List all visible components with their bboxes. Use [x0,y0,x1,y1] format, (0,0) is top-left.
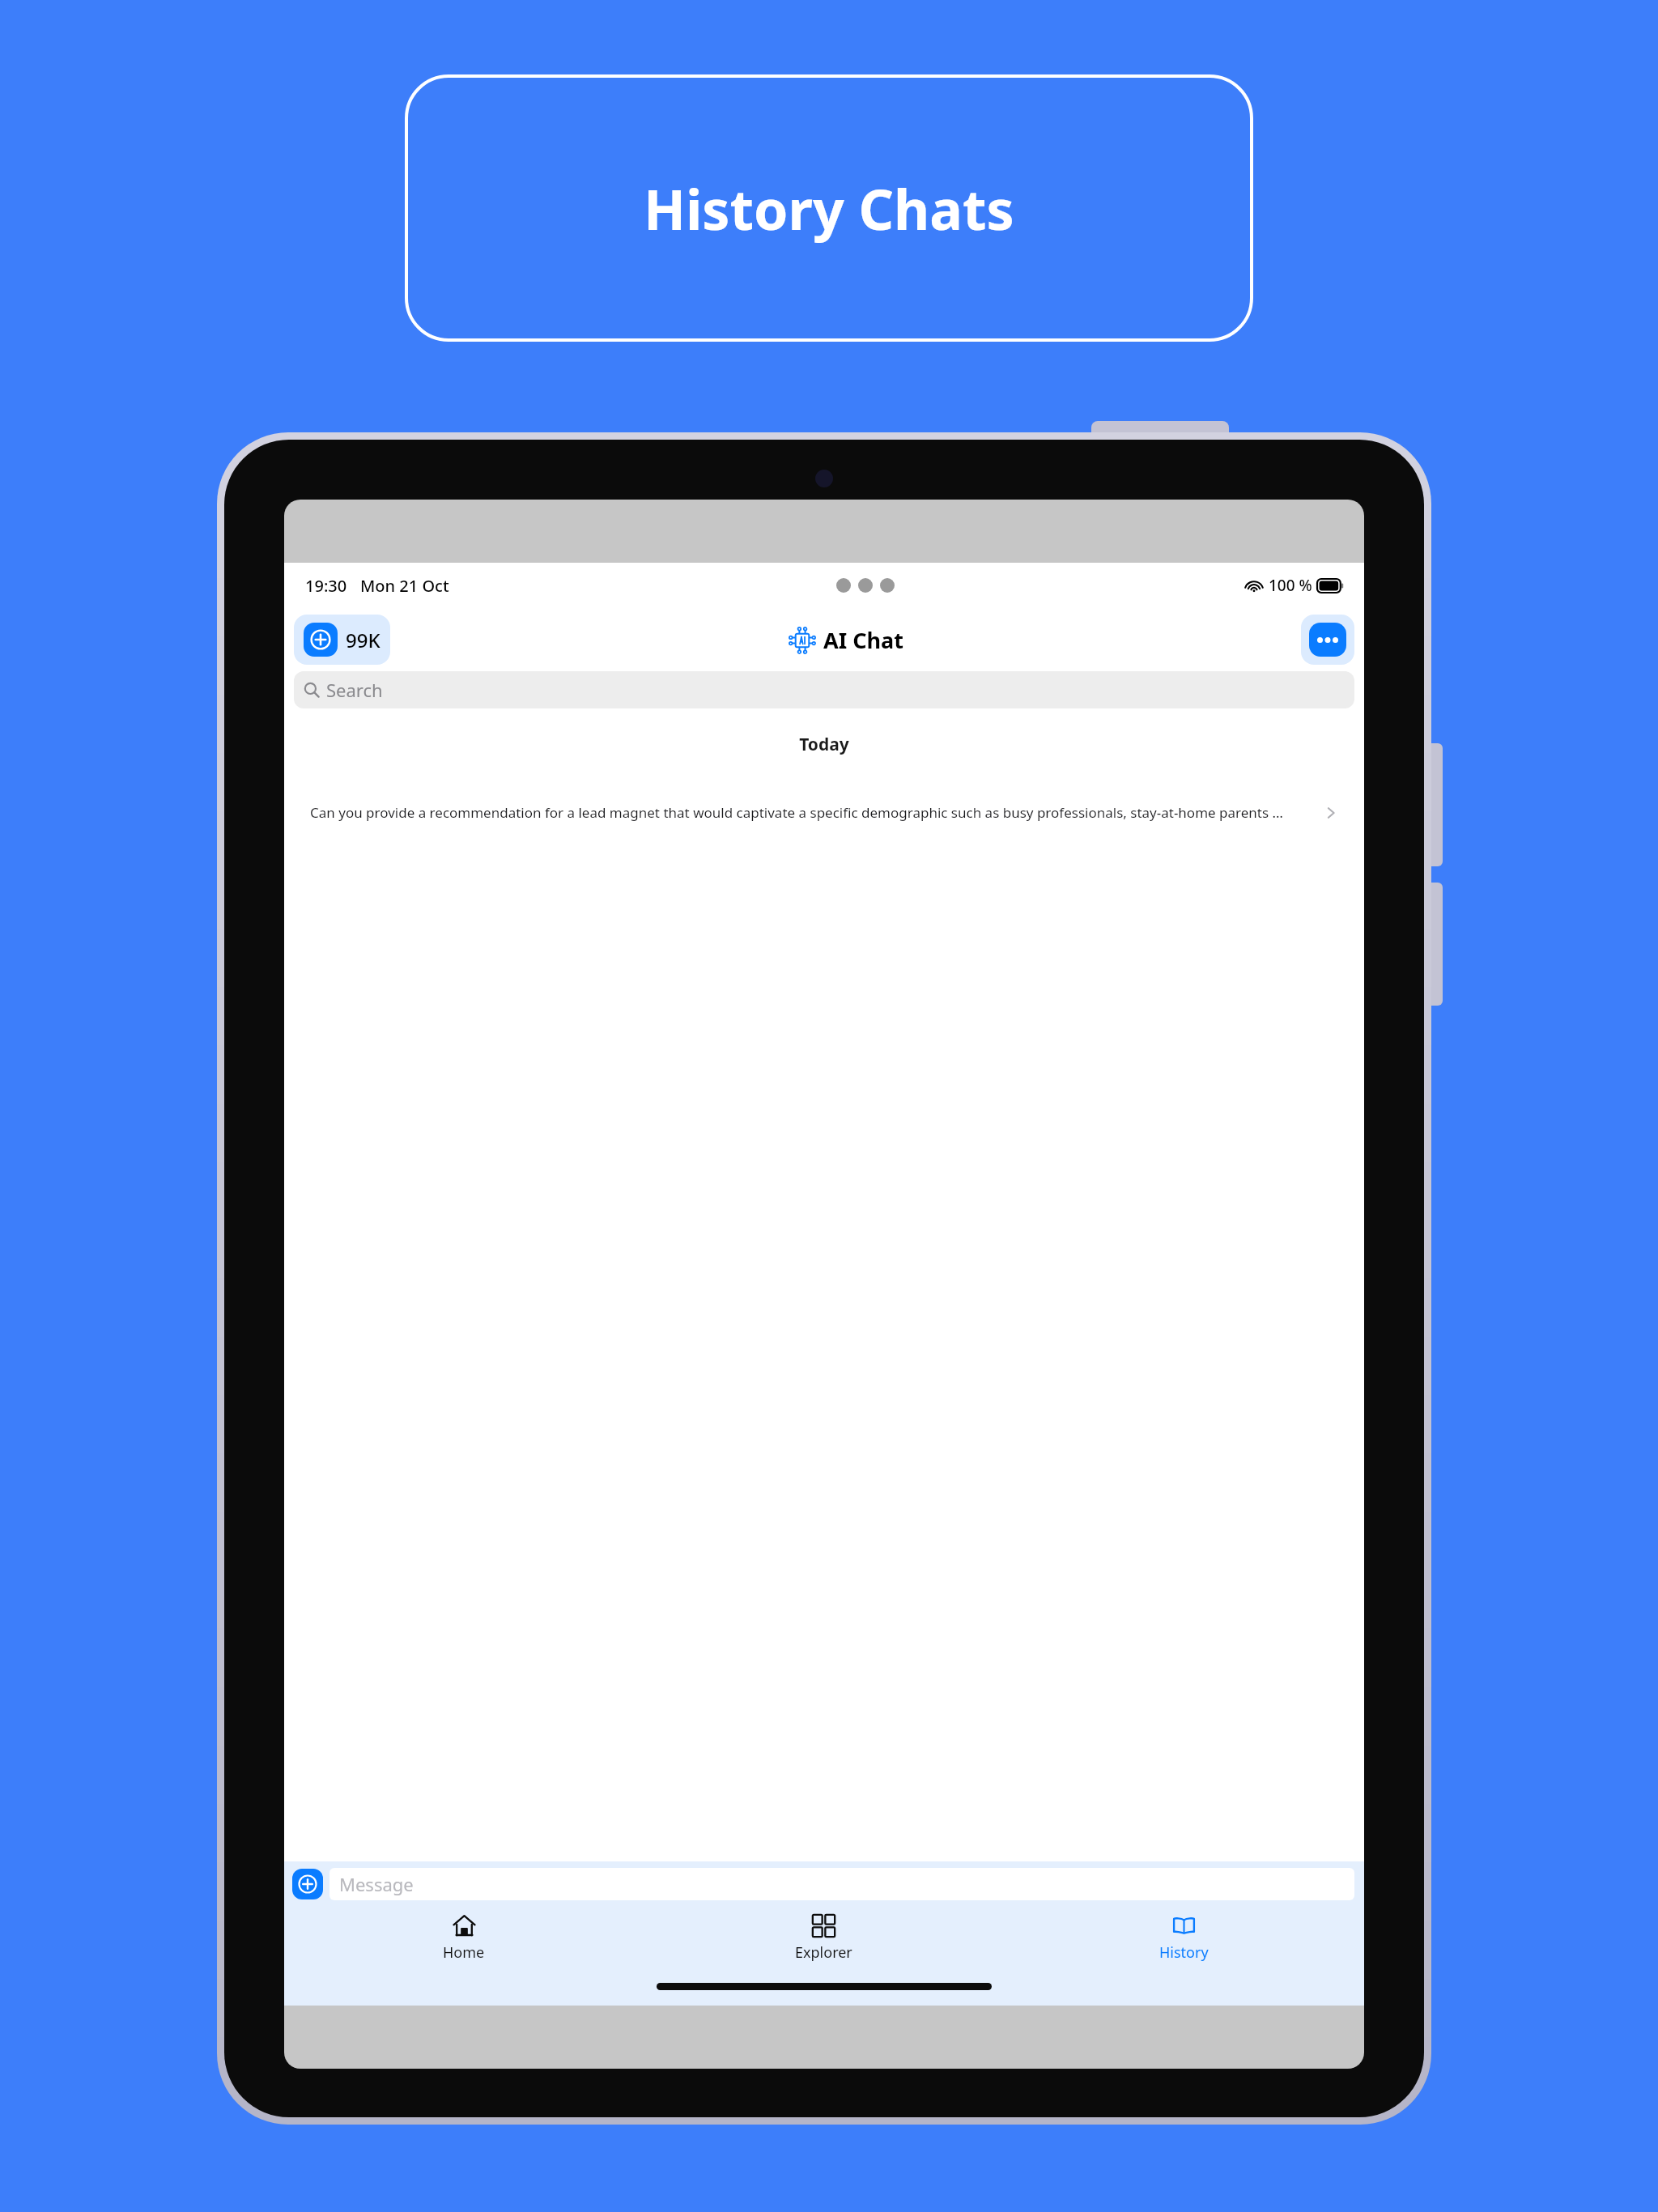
staticText: 100 % [1269,575,1312,596]
staticText: History [1159,1942,1209,1963]
button[interactable]: More options [1301,615,1354,665]
button[interactable]: Can you provide a recommendation for a l… [284,797,1364,828]
button[interactable]: Home [284,1910,644,1966]
staticText: Search [326,678,383,702]
staticText: Home [443,1942,485,1963]
button[interactable]: Explorer [644,1910,1004,1966]
staticText: AI Chat [823,625,903,655]
staticText: 19:30 [305,575,347,597]
button[interactable]: Message [329,1868,1354,1900]
button[interactable]: 99K [294,615,390,665]
staticText: Can you provide a recommendation for a l… [310,803,1317,822]
staticText: Message [339,1872,414,1896]
staticText: Today [284,733,1364,756]
button[interactable]: Add attachment [292,1869,323,1899]
staticText: Mon 21 Oct [360,575,449,597]
staticText: Explorer [795,1942,852,1963]
button[interactable]: Search [294,671,1354,708]
staticText: 99K [346,627,380,653]
button[interactable]: History [1004,1910,1364,1966]
staticText: History Chats [644,171,1014,246]
